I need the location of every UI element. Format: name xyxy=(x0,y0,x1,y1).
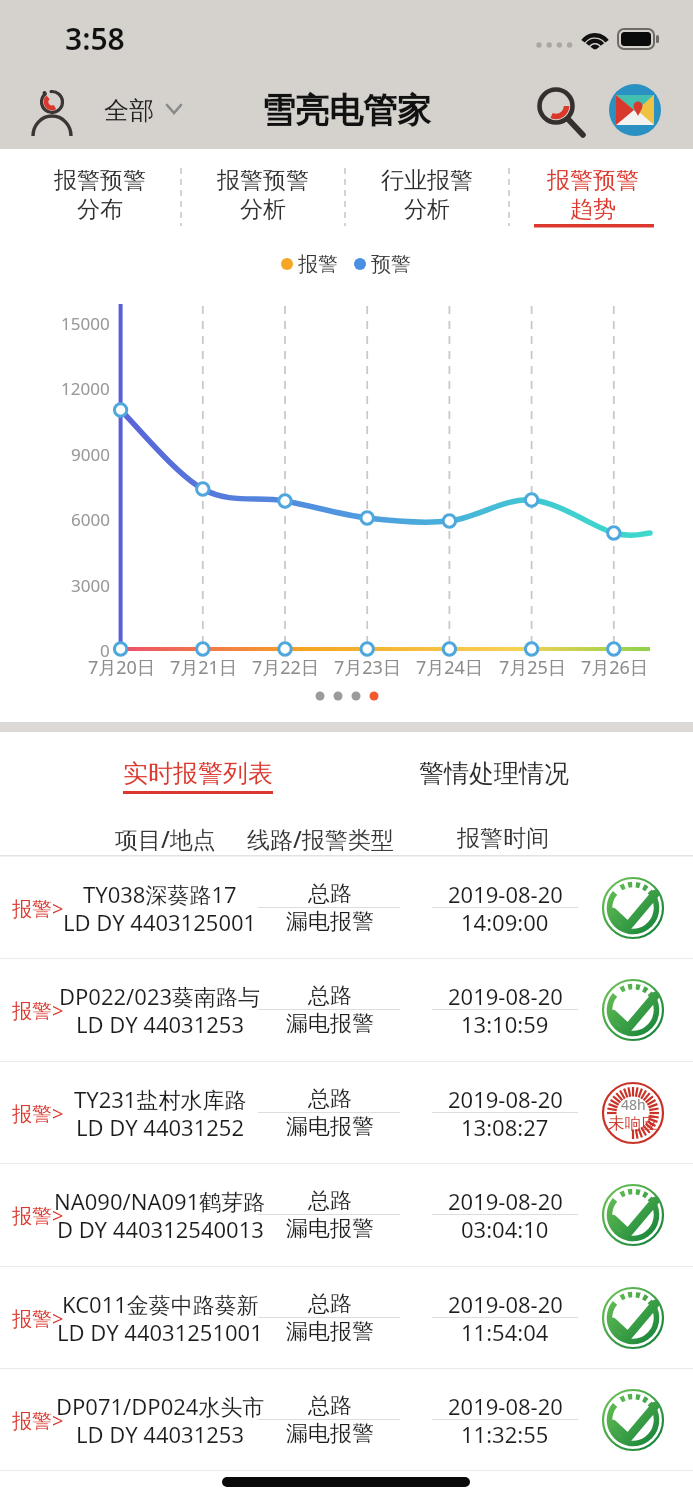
staticText: 项目/地点 xyxy=(115,823,216,854)
staticText: 48h xyxy=(621,1095,646,1114)
staticText: TY231盐村水库路 xyxy=(74,1084,247,1114)
staticText: 未响应 xyxy=(608,1113,658,1134)
staticText: D DY 440312540013 xyxy=(57,1214,264,1244)
staticText: 报警时间 xyxy=(457,824,549,853)
staticText: 雪亮电管家 xyxy=(261,89,431,132)
staticText: 13:10:59 xyxy=(461,1009,549,1039)
staticText: 2019-08-20 xyxy=(448,1391,563,1421)
staticText: 14:09:00 xyxy=(461,907,549,937)
staticText: 警情处理情况 xyxy=(419,758,569,789)
staticText: 7月21日 xyxy=(170,655,237,680)
staticText: 7月22日 xyxy=(252,655,319,680)
button[interactable]: 全部 xyxy=(104,86,186,134)
button[interactable] xyxy=(26,80,82,140)
button[interactable]: 报警预警 分析 xyxy=(181,152,345,236)
staticText: 总路 xyxy=(308,1392,352,1420)
staticText: 线路/报警类型 xyxy=(247,823,394,854)
button[interactable]: 实时报警列表 xyxy=(98,746,298,800)
staticText: LD DY 44031253 xyxy=(76,1009,244,1039)
staticText: 总路 xyxy=(308,982,352,1010)
staticText: 2019-08-20 xyxy=(448,1289,563,1319)
staticText: 13:08:27 xyxy=(461,1112,549,1142)
button[interactable]: 报警> xyxy=(0,1267,693,1369)
staticText: 漏电报警 xyxy=(286,1215,374,1243)
staticText: 漏电报警 xyxy=(286,1420,374,1448)
staticText: 7月23日 xyxy=(334,655,401,680)
staticText: 2019-08-20 xyxy=(448,981,563,1011)
button[interactable]: 报警预警 趋势 xyxy=(509,152,693,236)
button[interactable]: 行业报警 分析 xyxy=(345,152,509,236)
button[interactable]: 报警> xyxy=(0,857,693,959)
staticText: 报警> xyxy=(12,997,64,1024)
staticText: LD DY 44031253 xyxy=(76,1419,244,1449)
staticText: DP022/023葵南路与 xyxy=(59,981,261,1011)
staticText: 报警预警 分布 xyxy=(54,166,146,223)
staticText: 报警> xyxy=(12,1202,64,1229)
staticText: 0 xyxy=(100,639,110,662)
staticText: 实时报警列表 xyxy=(123,758,273,789)
staticText: 漏电报警 xyxy=(286,1318,374,1346)
staticText: 报警> xyxy=(12,1305,64,1332)
staticText: LD DY 4403125001 xyxy=(63,907,257,937)
staticText: KC011金葵中路葵新 xyxy=(62,1289,259,1319)
staticText: 报警> xyxy=(12,1100,64,1127)
staticText: 漏电报警 xyxy=(286,908,374,936)
staticText: 3:58 xyxy=(65,18,125,59)
staticText: 7月24日 xyxy=(416,655,483,680)
staticText: 报警> xyxy=(12,895,64,922)
staticText: 总路 xyxy=(308,1290,352,1318)
staticText: 漏电报警 xyxy=(286,1010,374,1038)
staticText: 报警 xyxy=(298,252,338,277)
staticText: 2019-08-20 xyxy=(448,1186,563,1216)
staticText: 2019-08-20 xyxy=(448,1084,563,1114)
staticText: 7月26日 xyxy=(581,655,648,680)
staticText: 7月20日 xyxy=(88,655,155,680)
staticText: 总路 xyxy=(308,1187,352,1215)
staticText: 11:54:04 xyxy=(461,1317,549,1347)
staticText: 总路 xyxy=(308,880,352,908)
staticText: LD DY 44031252 xyxy=(76,1112,244,1142)
staticText: 预警 xyxy=(371,252,411,277)
staticText: 3000 xyxy=(71,574,110,597)
staticText: 03:04:10 xyxy=(461,1214,549,1244)
staticText: 11:32:55 xyxy=(461,1419,549,1449)
button[interactable]: 报警> xyxy=(0,1164,693,1266)
staticText: 2019-08-20 xyxy=(448,879,563,909)
staticText: 报警预警 分析 xyxy=(217,166,309,223)
staticText: 6000 xyxy=(71,508,110,531)
staticText: 9000 xyxy=(71,443,110,466)
button[interactable]: 报警> xyxy=(0,1369,693,1471)
staticText: 7月25日 xyxy=(499,655,566,680)
staticText: 行业报警 分析 xyxy=(381,166,473,223)
button[interactable]: 报警> xyxy=(0,959,693,1061)
button[interactable]: 报警预警 分布 xyxy=(0,152,181,236)
staticText: 总路 xyxy=(308,1085,352,1113)
staticText: TY038深葵路17 xyxy=(83,879,237,909)
button[interactable] xyxy=(528,80,592,140)
staticText: 12000 xyxy=(61,377,110,400)
staticText: 全部 xyxy=(104,95,154,126)
button[interactable]: 报警> xyxy=(0,1062,693,1164)
button[interactable] xyxy=(606,81,664,139)
staticText: NA090/NA091鹤芽路 xyxy=(54,1186,266,1216)
button[interactable]: 警情处理情况 xyxy=(394,746,594,800)
staticText: 报警预警 趋势 xyxy=(547,166,639,223)
staticText: 报警> xyxy=(12,1407,64,1434)
staticText: LD DY 44031251001 xyxy=(57,1317,263,1347)
staticText: 15000 xyxy=(61,312,110,335)
staticText: 漏电报警 xyxy=(286,1113,374,1141)
staticText: DP071/DP024水头市 xyxy=(56,1391,265,1421)
